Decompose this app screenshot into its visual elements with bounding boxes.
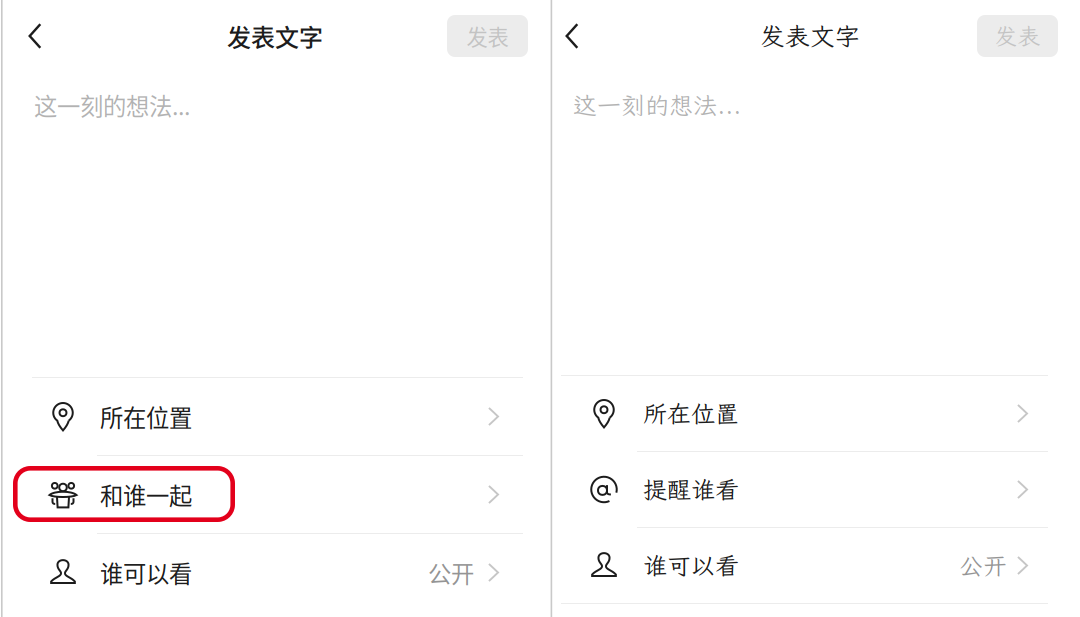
button[interactable]: 和谁一起 xyxy=(0,456,540,533)
staticText: 所在位置 xyxy=(100,400,192,433)
button[interactable]: 谁可以看 xyxy=(0,534,540,611)
staticText: 发表文字 xyxy=(227,19,323,53)
staticText: 发表文字 xyxy=(760,20,860,52)
staticText: 发表 xyxy=(994,21,1040,51)
staticText: 公开 xyxy=(959,550,1007,581)
staticText: 谁可以看 xyxy=(643,550,739,581)
button[interactable]: 谁可以看 xyxy=(540,528,1080,603)
button[interactable]: 发表 xyxy=(447,15,528,57)
button[interactable]: Back xyxy=(552,10,592,62)
button[interactable]: 提醒谁看 xyxy=(540,452,1080,527)
staticText: 提醒谁看 xyxy=(643,474,739,505)
button[interactable]: 所在位置 xyxy=(540,376,1080,451)
button[interactable]: 发表 xyxy=(977,15,1058,57)
staticText: 谁可以看 xyxy=(100,556,192,589)
staticText: 和谁一起 xyxy=(100,478,192,511)
button[interactable]: 所在位置 xyxy=(0,378,540,455)
button[interactable]: Back xyxy=(15,10,55,62)
staticText: 这一刻的想法... xyxy=(34,88,190,122)
staticText: 发表 xyxy=(466,21,508,51)
staticText: 所在位置 xyxy=(643,398,739,429)
staticText: 公开 xyxy=(428,556,474,589)
staticText: 这一刻的想法... xyxy=(573,89,741,121)
